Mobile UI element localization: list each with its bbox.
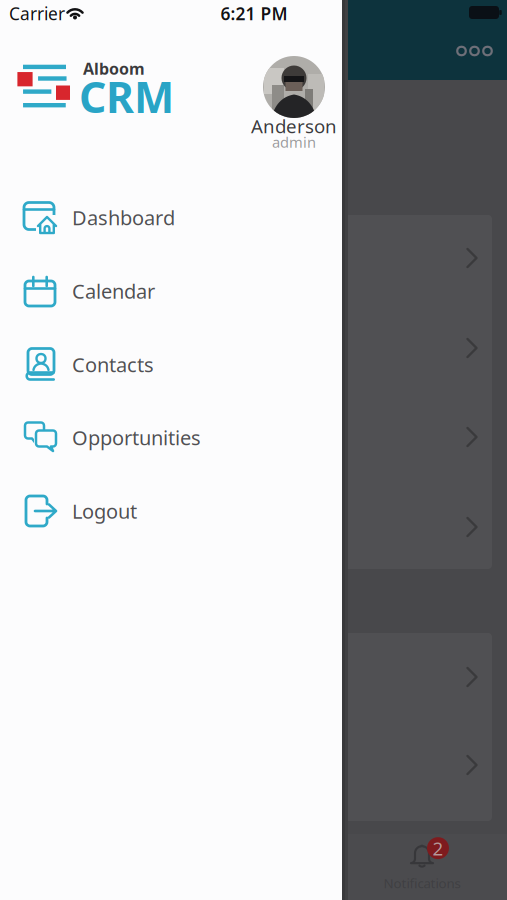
staticText: Carrier xyxy=(9,2,65,25)
staticText: Contacts xyxy=(72,351,154,378)
staticText: CRM xyxy=(79,68,174,125)
staticText: Calendar xyxy=(72,278,155,304)
button[interactable]: Profile, Anderson, admin xyxy=(234,46,354,156)
staticText: Anderson xyxy=(251,114,337,138)
button[interactable]: Logout xyxy=(0,482,310,540)
button[interactable]: Dashboard xyxy=(0,188,310,246)
staticText: admin xyxy=(272,132,316,152)
staticText: 2 xyxy=(432,836,443,861)
staticText: Dashboard xyxy=(72,204,175,231)
button[interactable]: More options xyxy=(451,36,497,66)
staticText: Notifications xyxy=(383,874,460,892)
button[interactable]: Calendar xyxy=(0,262,310,320)
button[interactable]: Contacts xyxy=(0,335,310,393)
button[interactable]: 2 xyxy=(367,836,477,898)
button[interactable]: Opportunities xyxy=(0,408,310,466)
staticText: Logout xyxy=(72,498,137,524)
staticText: Alboom xyxy=(83,58,145,79)
staticText: Opportunities xyxy=(72,424,201,451)
staticText: 6:21 PM xyxy=(220,2,287,25)
